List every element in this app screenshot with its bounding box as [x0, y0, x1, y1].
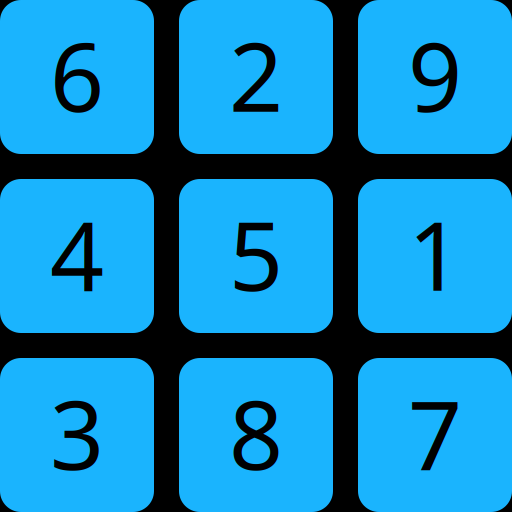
button[interactable]: 5	[179, 179, 333, 333]
staticText: 6	[50, 12, 104, 138]
button[interactable]: 4	[0, 179, 154, 333]
staticText: 9	[408, 12, 462, 138]
staticText: 8	[229, 370, 283, 496]
button[interactable]: 3	[0, 358, 154, 512]
button[interactable]: 1	[358, 179, 512, 333]
button[interactable]: 6	[0, 0, 154, 154]
staticText: 5	[229, 191, 283, 317]
button[interactable]: 2	[179, 0, 333, 154]
staticText: 2	[229, 12, 283, 138]
button[interactable]: 9	[358, 0, 512, 154]
button[interactable]: 8	[179, 358, 333, 512]
staticText: 3	[50, 370, 104, 496]
staticText: 1	[408, 191, 462, 317]
staticText: 4	[50, 191, 104, 317]
staticText: 7	[408, 370, 462, 496]
button[interactable]: 7	[358, 358, 512, 512]
